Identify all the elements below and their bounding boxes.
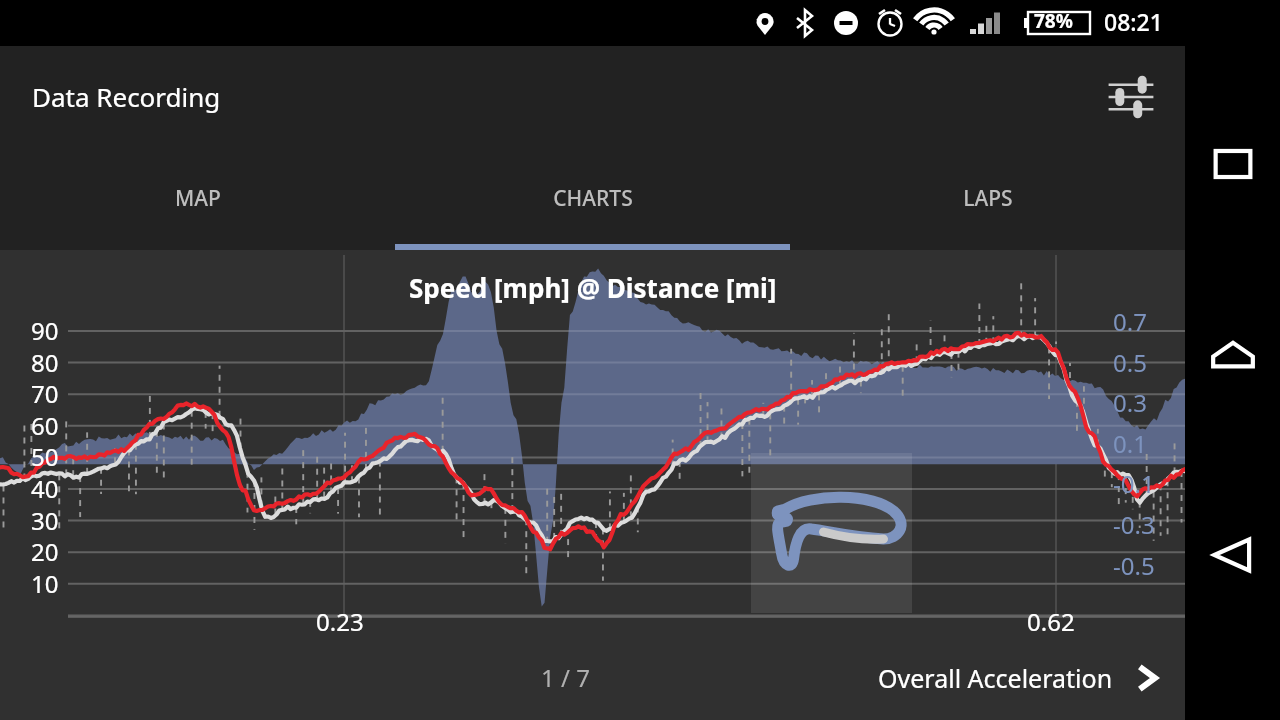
staticText: 1 / 7 xyxy=(541,661,590,694)
staticText: CHARTS xyxy=(553,184,633,213)
staticText: 0.23 xyxy=(316,605,364,638)
staticText: 60 xyxy=(31,409,59,442)
button[interactable]: Home xyxy=(1202,328,1264,390)
staticText: 08:21 xyxy=(1104,6,1163,37)
button[interactable]: Back xyxy=(1202,524,1264,586)
staticText: LAPS xyxy=(963,184,1013,213)
staticText: 50 xyxy=(31,440,59,473)
button[interactable]: Settings xyxy=(1103,69,1159,125)
staticText: 10 xyxy=(31,567,59,600)
staticText: 0.62 xyxy=(1027,605,1075,638)
staticText: 0.3 xyxy=(1113,386,1147,419)
staticText: Speed [mph] @ Distance [mi] xyxy=(409,270,777,305)
staticText: MAP xyxy=(175,184,221,213)
button[interactable]: Overall Acceleration xyxy=(878,658,1167,698)
staticText: 70 xyxy=(31,377,59,410)
staticText: -0.5 xyxy=(1113,549,1155,582)
staticText: 0.5 xyxy=(1113,346,1147,379)
button[interactable]: CHARTS xyxy=(395,147,790,250)
staticText: Data Recording xyxy=(32,79,221,114)
staticText: Overall Acceleration xyxy=(878,661,1113,695)
staticText: 40 xyxy=(31,472,59,505)
button[interactable]: MAP xyxy=(0,147,395,250)
staticText: -0.1 xyxy=(1113,467,1155,500)
staticText: 78% xyxy=(1034,8,1073,34)
button[interactable]: LAPS xyxy=(790,147,1185,250)
staticText: 20 xyxy=(31,535,59,568)
staticText: 30 xyxy=(31,504,59,537)
staticText: 0.1 xyxy=(1113,427,1147,460)
staticText: 90 xyxy=(31,314,59,347)
staticText: 80 xyxy=(31,346,59,379)
button[interactable]: Recents xyxy=(1202,133,1264,195)
staticText: -0.3 xyxy=(1113,508,1155,541)
staticText: 0.7 xyxy=(1113,305,1147,338)
